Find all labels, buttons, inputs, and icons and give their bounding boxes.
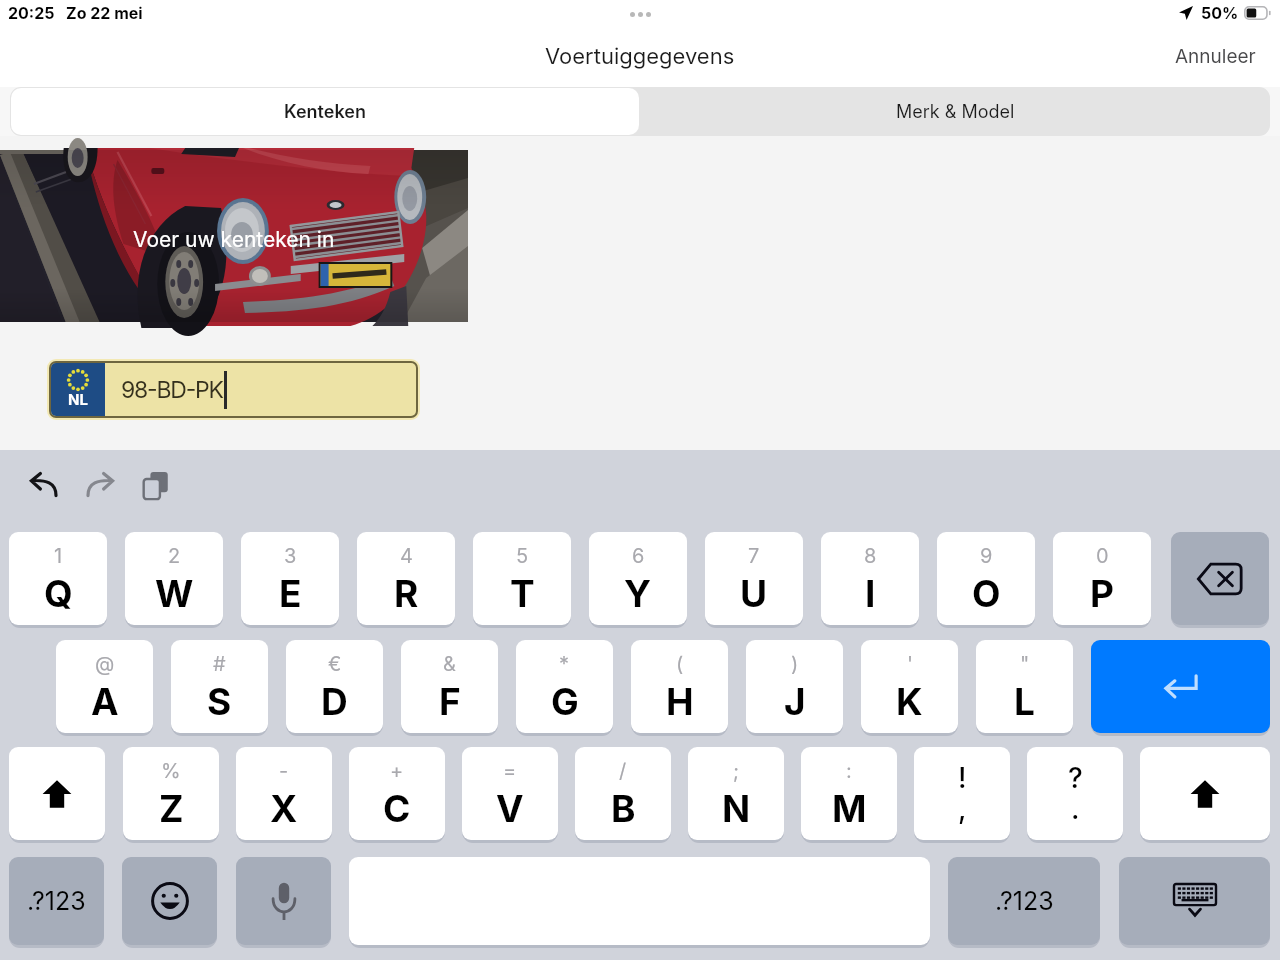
staticText: NL [68,390,88,408]
staticText: 98-BD-PK [121,376,223,404]
staticText: U [740,571,768,616]
button[interactable]: Redo [82,468,118,504]
staticText: Voer uw kenteken in [133,227,335,252]
staticText: 50% [1201,3,1239,22]
staticText: € [328,652,342,676]
staticText: = [503,759,517,783]
staticText: A [91,679,119,724]
button[interactable]: Undo [26,468,62,504]
staticText: 2 [168,544,181,568]
button[interactable]: Shift [1140,747,1270,840]
button[interactable]: Kenteken [11,88,639,135]
button[interactable]: # [171,640,268,733]
button[interactable]: .?123 [948,857,1100,945]
staticText: Zo 22 mei [66,3,143,22]
button[interactable]: 9 [937,532,1035,625]
button[interactable]: ? [1027,747,1123,840]
button[interactable]: 4 [357,532,455,625]
staticText: H [666,679,694,724]
button[interactable]: Emoji [122,857,217,945]
staticText: X [270,786,298,831]
staticText: ( [676,652,684,676]
staticText: J [784,679,806,724]
staticText: @ [95,652,115,676]
button[interactable]: Shift [9,747,105,840]
staticText: W [155,571,194,616]
staticText: Q [44,571,73,616]
staticText: Merk & Model [896,101,1015,123]
button[interactable]: 1 [9,532,107,625]
button[interactable]: Return [1091,640,1270,733]
button[interactable]: € [286,640,383,733]
staticText: Y [624,571,652,616]
staticText: 9 [980,544,993,568]
button[interactable]: Annuleer [1155,26,1280,87]
staticText: 4 [400,544,413,568]
button[interactable]: ) [746,640,843,733]
staticText: E [279,571,302,616]
staticText: 8 [864,544,877,568]
button[interactable]: 8 [821,532,919,625]
staticText: + [390,759,404,783]
button[interactable]: 3 [241,532,339,625]
staticText: & [443,652,456,676]
staticText: . [1071,792,1080,826]
staticText: - [279,759,289,783]
button[interactable]: ' [861,640,958,733]
button[interactable]: + [349,747,445,840]
staticText: 5 [516,544,529,568]
button[interactable]: % [123,747,219,840]
staticText: 3 [284,544,297,568]
button[interactable]: @ [56,640,153,733]
staticText: C [383,786,411,831]
button[interactable]: .?123 [9,857,104,945]
button[interactable]: 2 [125,532,223,625]
button[interactable]: = [462,747,558,840]
staticText: M [832,786,867,831]
staticText: Voertuiggegevens [545,43,735,70]
staticText: R [394,571,419,616]
button[interactable]: ; [688,747,784,840]
staticText: % [161,759,181,783]
button[interactable]: & [401,640,498,733]
staticText: * [559,652,570,676]
staticText: N [722,786,751,831]
button[interactable]: ! [914,747,1010,840]
staticText: 0 [1096,544,1109,568]
staticText: 1 [54,544,63,568]
staticText: S [207,679,232,724]
staticText: F [439,679,461,724]
button[interactable]: : [801,747,897,840]
staticText: 7 [748,544,760,568]
button[interactable]: NL [51,363,416,416]
button[interactable]: Dictate [236,857,331,945]
staticText: Annuleer [1175,45,1256,68]
staticText: ' [907,652,913,676]
button[interactable]: - [236,747,332,840]
button[interactable]: / [575,747,671,840]
staticText: Z [159,786,184,831]
button[interactable]: 5 [473,532,571,625]
staticText: L [1014,679,1035,724]
staticText: , [958,792,967,826]
button[interactable]: 7 [705,532,803,625]
staticText: G [551,679,579,724]
button[interactable]: Merk & Model [640,87,1270,136]
button[interactable]: Backspace [1171,532,1269,625]
button[interactable]: " [976,640,1073,733]
button[interactable]: Paste [138,468,174,504]
button[interactable]: ( [631,640,728,733]
staticText: # [213,652,226,676]
staticText: B [611,786,636,831]
staticText: O [972,571,1001,616]
button[interactable]: Hide keyboard [1119,857,1270,945]
staticText: ; [733,759,740,783]
staticText: ? [1068,761,1083,795]
staticText: " [1020,652,1030,676]
button[interactable]: 0 [1053,532,1151,625]
button[interactable]: 6 [589,532,687,625]
staticText: P [1090,571,1114,616]
staticText: D [321,679,348,724]
button[interactable]: * [516,640,613,733]
